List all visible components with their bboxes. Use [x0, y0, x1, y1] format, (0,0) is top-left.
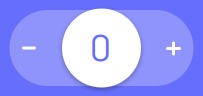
- button[interactable]: Increment: [154, 10, 193, 86]
- staticText: 0: [89, 23, 111, 69]
- button[interactable]: Decrement: [9, 10, 48, 86]
